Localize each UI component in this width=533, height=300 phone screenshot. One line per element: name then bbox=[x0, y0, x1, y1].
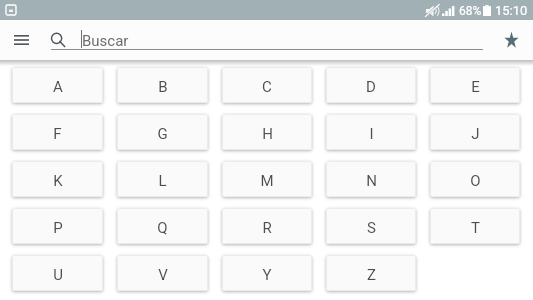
button[interactable]: Y bbox=[222, 255, 312, 291]
button[interactable]: N bbox=[326, 161, 416, 197]
button[interactable]: S bbox=[326, 208, 416, 244]
button[interactable]: P bbox=[12, 208, 103, 244]
staticText: K bbox=[53, 172, 63, 190]
button[interactable]: F bbox=[12, 114, 103, 150]
button[interactable]: Q bbox=[117, 208, 208, 244]
staticText: P bbox=[53, 219, 63, 237]
staticText: J bbox=[471, 125, 480, 143]
staticText: F bbox=[53, 125, 62, 143]
staticText: A bbox=[53, 78, 63, 96]
staticText: Y bbox=[262, 266, 272, 284]
button[interactable]: B bbox=[117, 67, 208, 103]
button[interactable]: G bbox=[117, 114, 208, 150]
button[interactable]: I bbox=[326, 114, 416, 150]
button[interactable]: Navigation menu bbox=[5, 24, 37, 56]
button[interactable]: Search bbox=[45, 27, 71, 53]
staticText: G bbox=[157, 125, 168, 143]
staticText: U bbox=[53, 266, 63, 284]
button[interactable]: H bbox=[222, 114, 312, 150]
staticText: L bbox=[158, 172, 167, 190]
staticText: B bbox=[158, 78, 168, 96]
button[interactable]: C bbox=[222, 67, 312, 103]
staticText: N bbox=[366, 172, 377, 190]
staticText: 15:10 bbox=[495, 3, 528, 18]
staticText: V bbox=[158, 266, 168, 284]
button[interactable]: R bbox=[222, 208, 312, 244]
button[interactable]: V bbox=[117, 255, 208, 291]
staticText: I bbox=[369, 125, 374, 143]
staticText: 68% bbox=[459, 4, 482, 18]
staticText: E bbox=[471, 78, 480, 96]
staticText: S bbox=[367, 219, 376, 237]
staticText: C bbox=[262, 78, 272, 96]
button[interactable]: O bbox=[430, 161, 520, 197]
button[interactable]: E bbox=[430, 67, 520, 103]
button[interactable]: J bbox=[430, 114, 520, 150]
button[interactable]: M bbox=[222, 161, 312, 197]
staticText: D bbox=[366, 78, 376, 96]
staticText: H bbox=[262, 125, 273, 143]
staticText: T bbox=[471, 219, 480, 237]
staticText: R bbox=[262, 219, 272, 237]
staticText: O bbox=[470, 172, 481, 190]
staticText: Buscar bbox=[82, 32, 129, 50]
staticText: M bbox=[260, 172, 274, 190]
button[interactable]: L bbox=[117, 161, 208, 197]
button[interactable]: T bbox=[430, 208, 520, 244]
staticText: Q bbox=[157, 219, 168, 237]
staticText: Z bbox=[367, 266, 376, 284]
button[interactable]: Z bbox=[326, 255, 416, 291]
button[interactable]: K bbox=[12, 161, 103, 197]
button[interactable]: Favorites bbox=[496, 25, 526, 55]
button[interactable]: D bbox=[326, 67, 416, 103]
button[interactable]: U bbox=[12, 255, 103, 291]
button[interactable]: A bbox=[12, 67, 103, 103]
